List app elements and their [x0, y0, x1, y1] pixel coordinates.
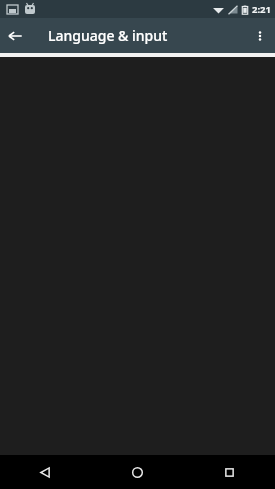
button[interactable]: Recent apps: [183, 455, 275, 489]
staticText: 2:21: [252, 3, 271, 16]
button[interactable]: Home: [91, 455, 183, 489]
button[interactable]: More options: [245, 21, 275, 51]
button[interactable]: Navigate up: [0, 21, 30, 51]
button[interactable]: Back: [0, 455, 91, 489]
staticText: Language & input: [48, 26, 168, 45]
